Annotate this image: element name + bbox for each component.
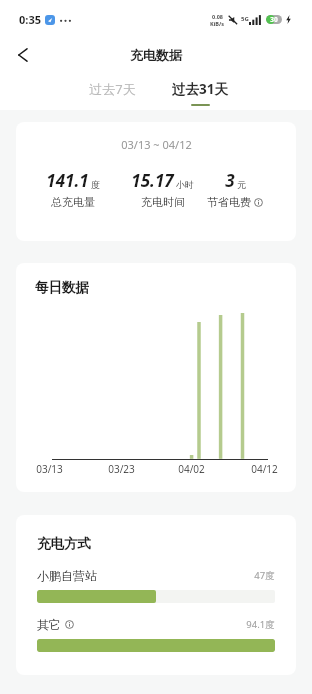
staticText: 03/13 ~ 04/12 [121, 137, 192, 152]
staticText: 充电时间 [141, 195, 185, 209]
staticText: 03/13 [36, 462, 63, 476]
staticText: 元 [237, 179, 246, 190]
staticText: 0.08 [212, 13, 223, 20]
staticText: 其它 [37, 617, 61, 632]
staticText: 小时 [176, 179, 194, 190]
staticText: 节省电费 [207, 195, 251, 209]
staticText: 过去7天 [89, 80, 136, 98]
staticText: 5G [241, 15, 249, 23]
staticText: 15.17 [131, 169, 174, 192]
staticText: 小鹏自营站 [37, 568, 97, 583]
staticText: 0:35 [19, 12, 41, 27]
staticText: 141.1 [46, 169, 89, 192]
button[interactable]: 过去31天 [156, 68, 244, 110]
staticText: 04/12 [251, 462, 278, 476]
staticText: 04/02 [178, 462, 205, 476]
staticText: KiB/s [210, 20, 224, 27]
staticText: 30 [270, 15, 278, 24]
staticText: 过去31天 [172, 80, 228, 98]
button[interactable]: 过去7天 [68, 68, 156, 110]
staticText: 总充电量 [51, 195, 95, 209]
staticText: 47度 [254, 569, 275, 582]
button[interactable] [10, 43, 34, 67]
staticText: 94.1度 [246, 618, 275, 631]
staticText: 度 [91, 179, 100, 190]
staticText: 充电数据 [130, 47, 182, 63]
staticText: 每日数据 [35, 279, 89, 296]
button[interactable]: 小鹏自营站 [37, 568, 275, 603]
staticText: 03/23 [108, 462, 135, 476]
button[interactable]: 其它 [37, 617, 275, 652]
staticText: 3 [225, 169, 235, 192]
staticText: 充电方式 [37, 535, 91, 552]
button[interactable] [65, 620, 74, 629]
button[interactable] [254, 198, 263, 207]
